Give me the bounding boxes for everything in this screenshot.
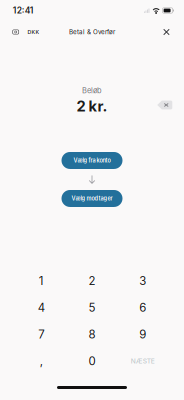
staticText: Beløb xyxy=(82,86,102,95)
staticText: 4 xyxy=(38,301,45,315)
staticText: NÆSTE xyxy=(131,357,155,365)
button[interactable]: 5 xyxy=(67,294,117,321)
button[interactable]: 2 xyxy=(67,267,117,294)
staticText: 5 xyxy=(88,301,95,315)
button[interactable]: NÆSTE xyxy=(117,348,168,375)
staticText: 7 xyxy=(38,327,44,341)
staticText: 0 xyxy=(88,354,95,368)
staticText: 6 xyxy=(139,301,146,315)
button[interactable]: Vælg fra konto xyxy=(61,152,122,169)
staticText: 12:41 xyxy=(13,5,34,16)
button[interactable]: 1 xyxy=(16,267,67,294)
staticText: 1 xyxy=(39,274,44,288)
staticText: 2 kr. xyxy=(76,97,107,115)
button[interactable]: 4 xyxy=(16,294,67,321)
staticText: 8 xyxy=(88,327,95,341)
staticText: 9 xyxy=(139,327,146,341)
button[interactable]: 9 xyxy=(117,321,168,348)
staticText: Betal & Overfør xyxy=(69,28,115,36)
staticText: , xyxy=(40,354,43,368)
button[interactable]: 0 xyxy=(67,348,117,375)
staticText: Vælg modtager xyxy=(71,195,112,202)
button[interactable]: Slet xyxy=(157,100,172,110)
staticText: Vælg fra konto xyxy=(73,157,110,164)
button[interactable]: Luk xyxy=(157,25,176,39)
button[interactable]: 8 xyxy=(67,321,117,348)
button[interactable]: Vælg modtager xyxy=(61,190,122,207)
button[interactable]: 3 xyxy=(117,267,168,294)
staticText: 3 xyxy=(139,274,146,288)
staticText: DKK xyxy=(27,29,39,35)
button[interactable]: 7 xyxy=(16,321,67,348)
button[interactable]: 6 xyxy=(117,294,168,321)
button[interactable]: DKK xyxy=(6,25,45,39)
staticText: 2 xyxy=(88,274,95,288)
button[interactable]: , xyxy=(16,348,67,375)
